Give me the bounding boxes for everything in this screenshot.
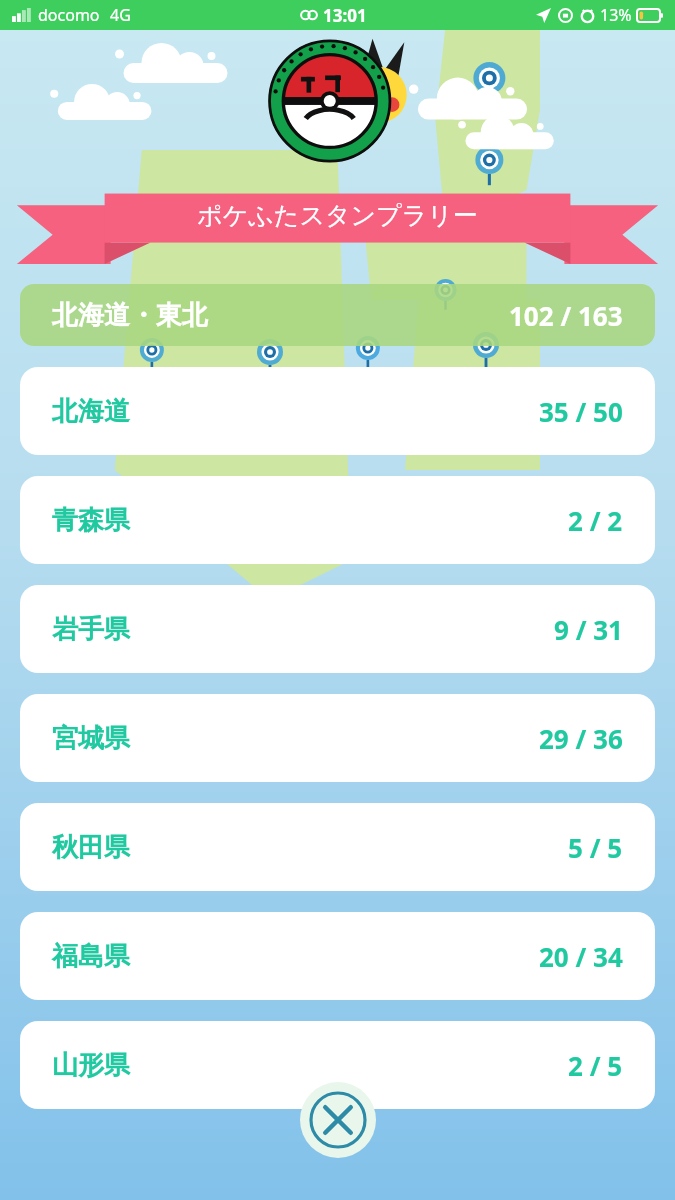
button[interactable]: 宮城県 — [20, 694, 655, 782]
staticText: 20 / 34 — [539, 939, 623, 974]
button[interactable]: 山形県 — [20, 1021, 655, 1109]
staticText: docomo — [38, 4, 100, 26]
staticText: 29 / 36 — [539, 721, 623, 756]
staticText: 秋田県 — [52, 831, 130, 864]
button[interactable]: 北海道 — [20, 367, 655, 455]
button[interactable]: 北海道・東北 — [20, 284, 655, 346]
button[interactable]: 岩手県 — [20, 585, 655, 673]
staticText: ポケふたスタンプラリー — [197, 200, 478, 231]
staticText: 岩手県 — [52, 613, 130, 646]
staticText: 2 / 2 — [568, 503, 623, 538]
staticText: 13% — [600, 4, 632, 26]
staticText: 宮城県 — [52, 722, 130, 755]
staticText: 北海道・東北 — [52, 299, 208, 332]
staticText: 9 / 31 — [554, 612, 623, 647]
button[interactable]: 秋田県 — [20, 803, 655, 891]
staticText: 4G — [110, 4, 131, 26]
staticText: 35 / 50 — [539, 394, 623, 429]
staticText: 102 / 163 — [509, 298, 623, 333]
button[interactable]: Close — [300, 1082, 376, 1158]
staticText: 北海道 — [52, 395, 130, 428]
staticText: 福島県 — [52, 940, 130, 973]
staticText: 13:01 — [323, 4, 367, 27]
staticText: 青森県 — [52, 504, 130, 537]
staticText: 2 / 5 — [568, 1048, 623, 1083]
staticText: 山形県 — [52, 1049, 130, 1082]
staticText: 5 / 5 — [568, 830, 623, 865]
button[interactable]: 福島県 — [20, 912, 655, 1000]
button[interactable]: 青森県 — [20, 476, 655, 564]
